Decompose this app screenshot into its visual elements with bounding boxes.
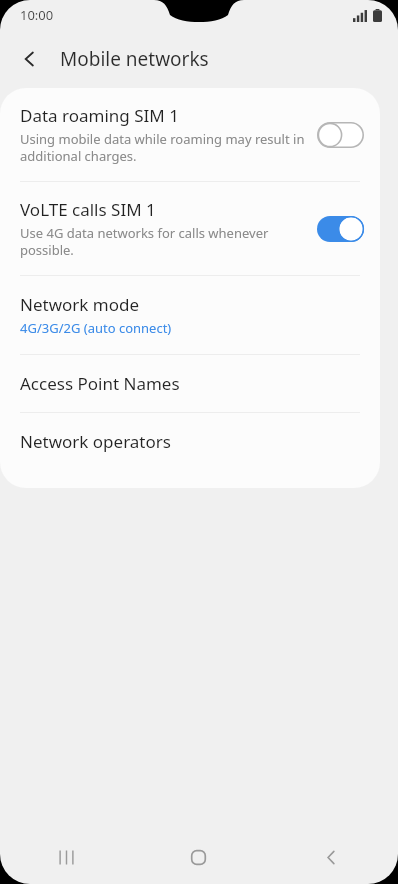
- button[interactable]: Off: [317, 122, 364, 148]
- button[interactable]: Network mode: [0, 276, 380, 354]
- staticText: Mobile networks: [60, 46, 209, 72]
- staticText: Using mobile data while roaming may resu…: [20, 130, 305, 165]
- button[interactable]: Data roaming SIM 1: [0, 88, 380, 181]
- staticText: Network operators: [20, 430, 171, 453]
- staticText: Data roaming SIM 1: [20, 104, 179, 127]
- button[interactable]: Back: [265, 830, 398, 884]
- button[interactable]: Back: [8, 37, 52, 81]
- staticText: 10:00: [20, 6, 54, 24]
- staticText: Use 4G data networks for calls whenever …: [20, 224, 269, 259]
- button[interactable]: Recents: [0, 830, 132, 884]
- staticText: VoLTE calls SIM 1: [20, 198, 156, 221]
- staticText: Network mode: [20, 293, 140, 316]
- button[interactable]: Access Point Names: [0, 355, 380, 412]
- staticText: Access Point Names: [20, 372, 180, 395]
- staticText: 4G/3G/2G (auto connect): [20, 319, 172, 337]
- button[interactable]: VoLTE calls SIM 1: [0, 182, 380, 275]
- button[interactable]: On: [317, 216, 364, 242]
- button[interactable]: Home: [132, 830, 265, 884]
- button[interactable]: Network operators: [0, 413, 380, 470]
